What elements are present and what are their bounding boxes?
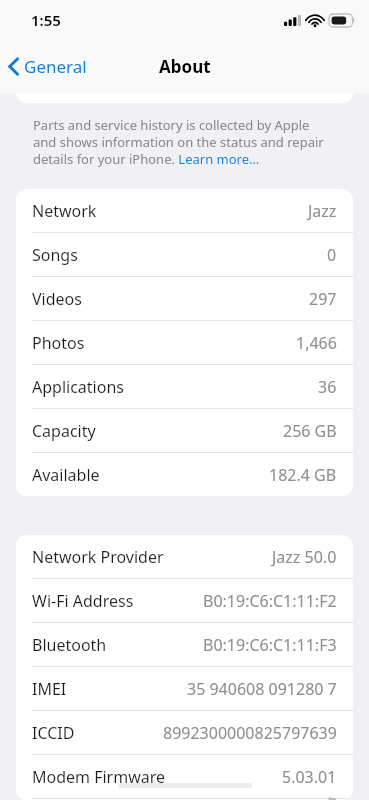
staticText: 5.03.01 xyxy=(282,766,337,788)
button[interactable]: Network Provider xyxy=(16,535,353,578)
button[interactable]: General xyxy=(0,49,97,84)
staticText: 1:55 xyxy=(31,10,61,30)
button[interactable]: Applications xyxy=(16,365,353,408)
button[interactable]: Songs xyxy=(16,233,353,276)
button[interactable]: IMEI xyxy=(16,667,353,710)
staticText: Wi-Fi Address xyxy=(32,590,134,612)
button[interactable]: Modem Firmware xyxy=(16,755,353,798)
other: Open SEID xyxy=(328,799,336,800)
button[interactable]: Network xyxy=(16,189,353,232)
staticText: B0:19:C6:C1:11:F3 xyxy=(203,634,337,656)
staticText: Bluetooth xyxy=(32,634,107,656)
button[interactable]: Capacity xyxy=(16,409,353,452)
staticText: 36 xyxy=(318,376,337,398)
button[interactable]: ICCID xyxy=(16,711,353,754)
staticText: 256 GB xyxy=(283,420,337,442)
staticText: Network Provider xyxy=(32,546,164,568)
button[interactable]: Wi-Fi Address xyxy=(16,579,353,622)
staticText: Jazz xyxy=(308,200,337,222)
button[interactable]: Bluetooth xyxy=(16,623,353,666)
staticText: 8992300000825797639 xyxy=(163,722,337,744)
staticText: Network xyxy=(32,200,97,222)
button[interactable]: SEID xyxy=(16,799,353,800)
staticText: Jazz 50.0 xyxy=(272,546,337,568)
staticText: About xyxy=(159,55,211,78)
staticText: Available xyxy=(32,464,100,486)
staticText: 0 xyxy=(327,244,337,266)
button[interactable]: Photos xyxy=(16,321,353,364)
button[interactable]: Available xyxy=(16,453,353,496)
staticText: Capacity xyxy=(32,420,96,442)
staticText: General xyxy=(24,55,87,78)
staticText: 35 940608 091280 7 xyxy=(187,678,337,700)
staticText: 297 xyxy=(309,288,337,310)
staticText: Videos xyxy=(32,288,82,310)
button[interactable]: Videos xyxy=(16,277,353,320)
staticText: Photos xyxy=(32,332,85,354)
staticText: ICCID xyxy=(32,722,75,744)
staticText: IMEI xyxy=(32,678,67,700)
staticText: Songs xyxy=(32,244,78,266)
staticText: Modem Firmware xyxy=(32,766,166,788)
staticText: B0:19:C6:C1:11:F2 xyxy=(203,590,337,612)
staticText: 1,466 xyxy=(296,332,337,354)
staticText: 182.4 GB xyxy=(269,464,337,486)
staticText: Applications xyxy=(32,376,124,398)
staticText: Parts and service history is collected b… xyxy=(33,116,336,168)
